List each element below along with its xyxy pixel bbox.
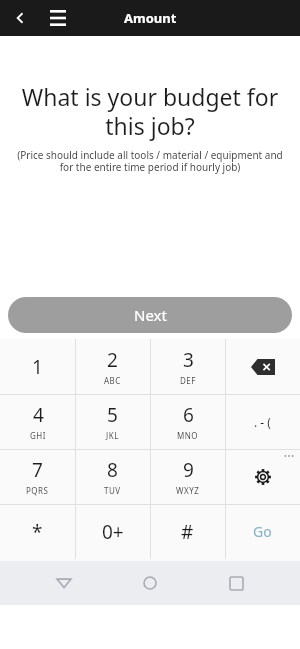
staticText: . - (	[254, 414, 271, 430]
staticText: ABC	[104, 375, 121, 386]
staticText: JKL	[106, 430, 119, 441]
staticText: WXYZ	[176, 485, 200, 496]
button[interactable]: Home	[128, 561, 172, 605]
button[interactable]: 2	[75, 339, 150, 394]
staticText: 5	[107, 402, 118, 428]
button[interactable]: 9	[150, 449, 225, 504]
staticText: DEF	[180, 375, 196, 386]
button[interactable]: Recent apps	[214, 561, 258, 605]
button[interactable]: 5	[75, 394, 150, 449]
button[interactable]: Back	[6, 4, 34, 32]
staticText: PQRS	[26, 485, 49, 496]
staticText: 4	[33, 402, 44, 428]
button[interactable]: 8	[75, 449, 150, 504]
button[interactable]: Menu	[44, 4, 72, 32]
staticText: *	[32, 519, 43, 545]
button[interactable]: 6	[150, 394, 225, 449]
staticText: 9	[183, 457, 194, 483]
staticText: MNO	[177, 430, 199, 441]
staticText: 0+	[102, 519, 124, 545]
staticText: Go	[253, 522, 272, 541]
button[interactable]: Go	[225, 504, 300, 559]
button[interactable]: 0+	[75, 504, 150, 559]
button[interactable]: Backspace	[225, 339, 300, 394]
button[interactable]: 3	[150, 339, 225, 394]
staticText: 8	[107, 457, 118, 483]
button[interactable]: Back	[42, 561, 86, 605]
button[interactable]: 7	[0, 449, 75, 504]
staticText: What is your budget for this job?	[10, 81, 290, 142]
button[interactable]: 4	[0, 394, 75, 449]
button[interactable]: Next	[8, 297, 292, 333]
staticText: 3	[183, 347, 194, 373]
staticText: Next	[134, 305, 167, 325]
button[interactable]: *	[0, 504, 75, 559]
button[interactable]: Settings	[225, 449, 300, 504]
staticText: GHI	[30, 430, 46, 441]
staticText: 1	[32, 354, 43, 380]
staticText: 7	[32, 457, 43, 483]
button[interactable]: . - (	[225, 394, 300, 449]
staticText: Amount	[124, 9, 177, 27]
staticText: 6	[183, 402, 194, 428]
staticText: TUV	[104, 485, 121, 496]
staticText: 2	[107, 347, 118, 373]
button[interactable]: #	[150, 504, 225, 559]
staticText: #	[181, 519, 194, 545]
button[interactable]: 1	[0, 339, 75, 394]
staticText: (Price should include all tools / materi…	[10, 148, 290, 174]
